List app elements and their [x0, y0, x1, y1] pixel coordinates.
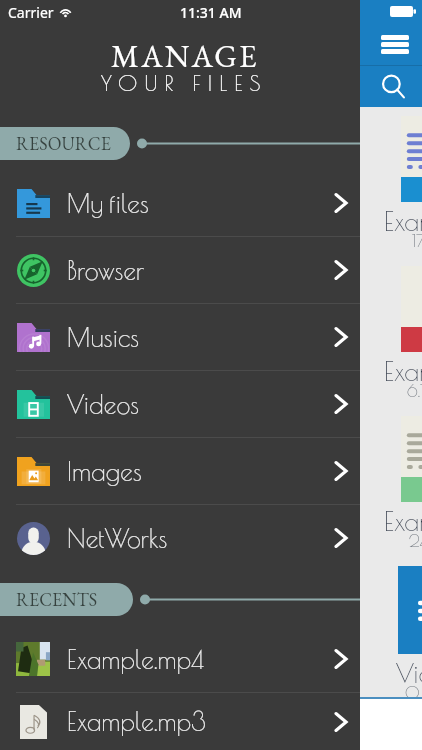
- staticText: Musics: [67, 323, 140, 352]
- button[interactable]: NetWorks: [0, 505, 360, 571]
- staticText: Example.mp4: [67, 645, 204, 674]
- button[interactable]: D: [362, 116, 422, 256]
- staticText: Video: [396, 658, 422, 688]
- staticText: Example: [384, 206, 422, 236]
- staticText: Carrier: [8, 3, 54, 22]
- button[interactable]: Video: [362, 566, 422, 706]
- button[interactable]: Menu: [373, 24, 417, 65]
- staticText: 11:31 AM: [180, 3, 242, 22]
- button[interactable]: X: [362, 416, 422, 556]
- staticText: MANAGE: [111, 36, 259, 76]
- button[interactable]: P: [362, 266, 422, 406]
- staticText: Example: [384, 356, 422, 386]
- staticText: 6.1 MB: [407, 381, 422, 401]
- staticText: Images: [67, 457, 142, 486]
- button[interactable]: Browser: [0, 237, 360, 304]
- staticText: Example: [384, 506, 422, 536]
- button[interactable]: Example.mp4: [0, 626, 360, 693]
- button[interactable]: Search: [373, 66, 415, 107]
- staticText: Videos: [67, 390, 140, 419]
- staticText: 24 KB: [409, 531, 422, 551]
- staticText: My files: [67, 189, 149, 218]
- staticText: 0 item: [405, 683, 422, 703]
- staticText: Browser: [67, 256, 145, 285]
- button[interactable]: Images: [0, 438, 360, 505]
- staticText: NetWorks: [67, 524, 168, 553]
- staticText: RESOURCE: [16, 132, 111, 155]
- staticText: RECENTS: [16, 588, 98, 611]
- button[interactable]: Example.mp3: [0, 693, 360, 750]
- button[interactable]: Videos: [0, 371, 360, 438]
- staticText: YOUR FILES: [101, 70, 268, 96]
- button[interactable]: My files: [0, 170, 360, 237]
- staticText: Example.mp3: [67, 707, 207, 736]
- button[interactable]: Musics: [0, 304, 360, 371]
- staticText: 17 KB: [412, 231, 422, 251]
